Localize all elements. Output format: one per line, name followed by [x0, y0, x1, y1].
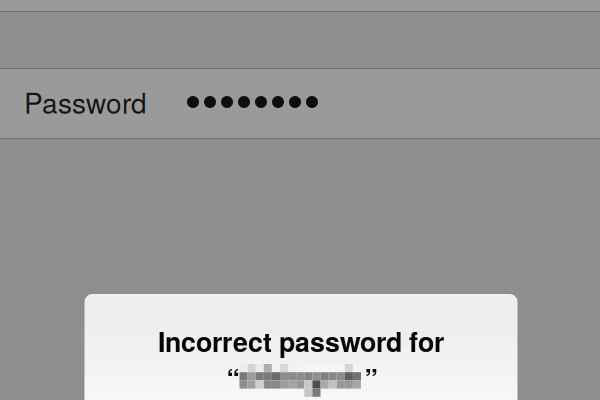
staticText: Password [24, 82, 147, 122]
staticText: ” [364, 359, 377, 397]
staticText: Incorrect password for [158, 322, 444, 360]
button[interactable]: Password [0, 69, 600, 138]
staticText: “ [226, 359, 239, 397]
